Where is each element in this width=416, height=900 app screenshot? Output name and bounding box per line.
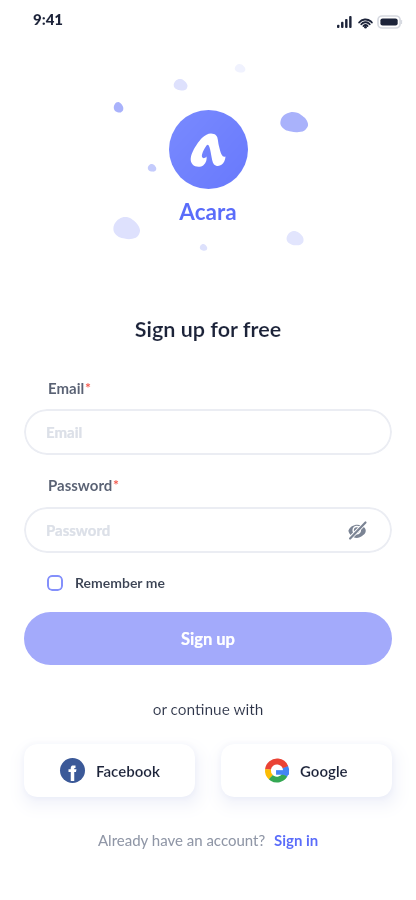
staticText: Password: [46, 521, 111, 539]
button[interactable]: Sign in: [274, 831, 319, 849]
staticText: Password: [48, 476, 113, 494]
staticText: 9:41: [33, 10, 64, 28]
staticText: Sign in: [274, 831, 319, 849]
button[interactable]: Password: [24, 507, 392, 553]
staticText: Sign up for free: [0, 316, 416, 342]
button[interactable]: Remember me: [47, 574, 165, 591]
staticText: *: [85, 379, 91, 396]
staticText: *: [113, 476, 119, 493]
button[interactable]: Google: [221, 744, 392, 797]
staticText: Sign up: [181, 629, 235, 649]
staticText: Facebook: [96, 762, 160, 780]
button[interactable]: Sign up: [24, 612, 392, 665]
staticText: Acara: [0, 198, 416, 225]
staticText: Email: [48, 379, 85, 397]
staticText: Google: [300, 762, 348, 780]
staticText: Email: [46, 423, 83, 441]
staticText: Remember me: [75, 574, 165, 591]
staticText: or continue with: [0, 700, 416, 718]
button[interactable]: Email: [24, 409, 392, 455]
button[interactable]: Show password: [344, 517, 370, 543]
staticText: Already have an account?: [98, 831, 266, 849]
button[interactable]: Facebook: [24, 744, 195, 797]
